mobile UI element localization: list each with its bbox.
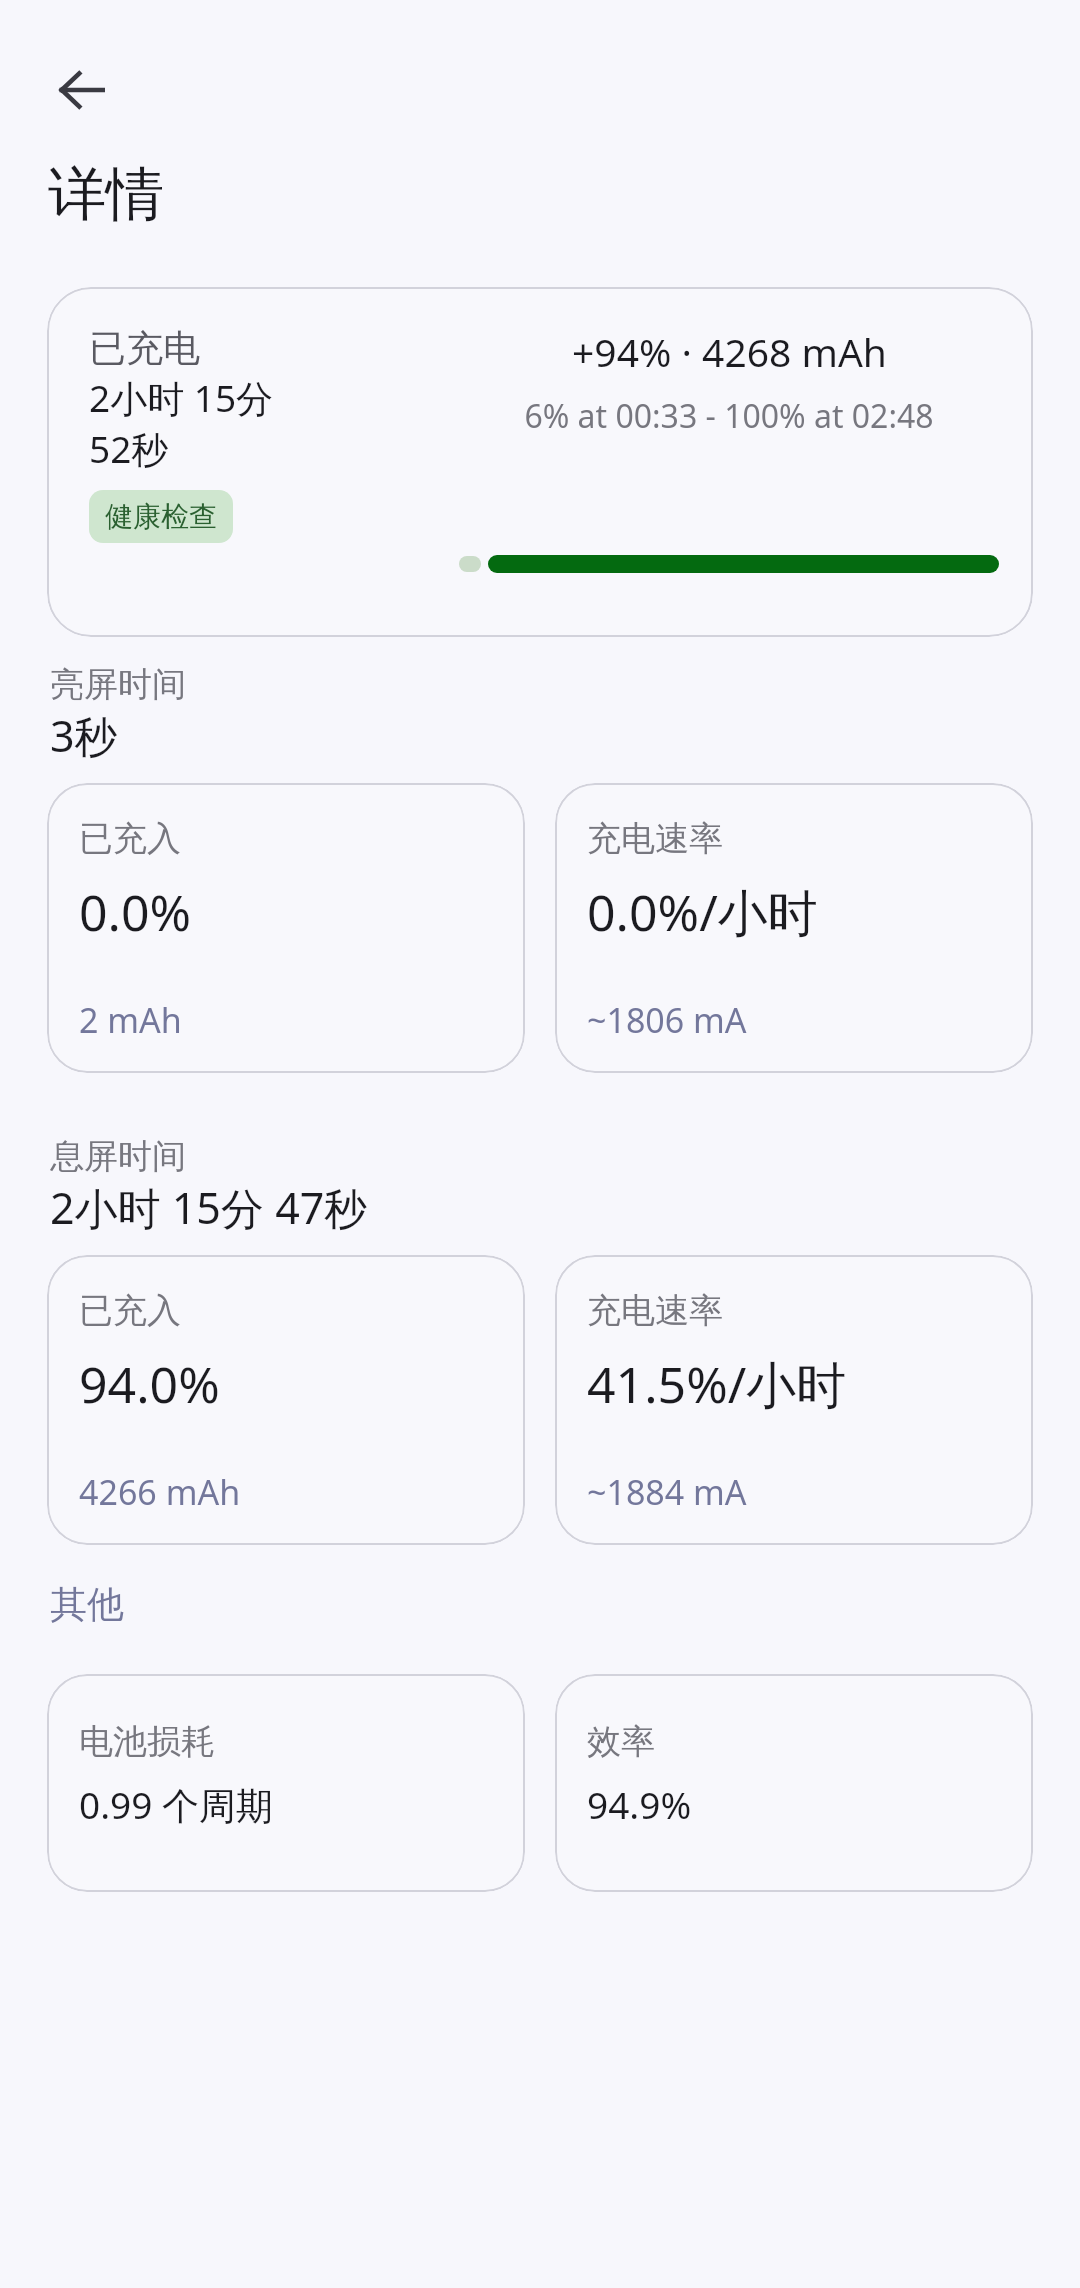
- staticText: +94% · 4268 mAh: [572, 325, 887, 378]
- staticText: 41.5%/小时: [587, 1350, 847, 1418]
- button[interactable]: Back: [36, 44, 128, 136]
- staticText: 52秒: [89, 423, 169, 474]
- button[interactable]: 已充电: [47, 287, 1033, 637]
- button[interactable]: 电池损耗: [47, 1674, 525, 1892]
- staticText: 94.0%: [79, 1350, 220, 1418]
- staticText: 2 mAh: [79, 997, 182, 1043]
- staticText: 0.0%: [79, 878, 192, 946]
- staticText: 6% at 00:33 - 100% at 02:48: [524, 394, 934, 438]
- staticText: 健康检查: [105, 499, 217, 534]
- button[interactable]: 已充入: [47, 783, 525, 1073]
- button[interactable]: 健康检查: [89, 490, 233, 543]
- button[interactable]: 充电速率: [555, 1255, 1033, 1545]
- staticText: 3秒: [50, 706, 118, 765]
- staticText: 2小时 15分: [89, 372, 274, 423]
- staticText: 息屏时间: [50, 1135, 186, 1178]
- staticText: 充电速率: [587, 817, 723, 860]
- staticText: 效率: [587, 1720, 655, 1763]
- button[interactable]: 充电速率: [555, 783, 1033, 1073]
- button[interactable]: 已充入: [47, 1255, 525, 1545]
- staticText: 已充入: [79, 1289, 181, 1332]
- staticText: 电池损耗: [79, 1720, 215, 1763]
- staticText: 其他: [50, 1581, 124, 1628]
- staticText: 已充入: [79, 817, 181, 860]
- staticText: 2小时 15分 47秒: [50, 1178, 368, 1237]
- staticText: 充电速率: [587, 1289, 723, 1332]
- button[interactable]: 效率: [555, 1674, 1033, 1892]
- staticText: 94.9%: [587, 1779, 692, 1829]
- staticText: 亮屏时间: [50, 663, 186, 706]
- staticText: 0.0%/小时: [587, 878, 818, 946]
- staticText: ~1884 mA: [587, 1469, 747, 1515]
- staticText: 详情: [48, 158, 164, 231]
- staticText: 4266 mAh: [79, 1469, 241, 1515]
- staticText: 已充电: [89, 325, 200, 372]
- staticText: ~1806 mA: [587, 997, 747, 1043]
- staticText: 0.99 个周期: [79, 1779, 274, 1830]
